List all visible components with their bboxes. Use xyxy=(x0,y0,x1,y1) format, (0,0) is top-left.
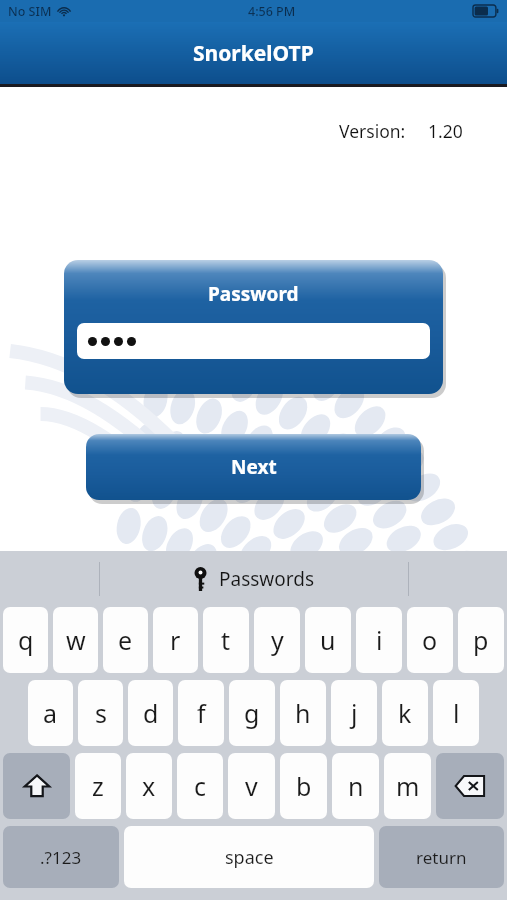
staticText: t xyxy=(221,623,231,657)
staticText: Password xyxy=(208,281,299,307)
staticText: w xyxy=(66,623,86,657)
staticText: z xyxy=(92,769,104,803)
button[interactable]: o xyxy=(407,607,453,673)
button[interactable]: r xyxy=(153,607,198,673)
button[interactable]: u xyxy=(305,607,351,673)
button[interactable]: Shift xyxy=(3,753,70,819)
staticText: q xyxy=(18,623,34,657)
staticText: n xyxy=(348,769,364,803)
button[interactable]: i xyxy=(356,607,402,673)
button[interactable]: Next xyxy=(86,434,421,500)
staticText: a xyxy=(43,696,58,730)
button[interactable]: s xyxy=(78,680,123,746)
staticText: e xyxy=(118,623,133,657)
staticText: b xyxy=(296,769,312,803)
staticText: x xyxy=(142,769,156,803)
staticText: u xyxy=(320,623,336,657)
staticText: v xyxy=(245,769,258,803)
button[interactable]: p xyxy=(458,607,504,673)
staticText: c xyxy=(194,769,207,803)
button[interactable]: x xyxy=(126,753,172,819)
button[interactable]: d xyxy=(128,680,173,746)
staticText: i xyxy=(376,623,383,657)
staticText: p xyxy=(473,623,489,657)
button[interactable]: c xyxy=(177,753,223,819)
staticText: m xyxy=(396,769,420,803)
staticText: Passwords xyxy=(219,566,315,592)
staticText: SnorkelOTP xyxy=(193,39,314,68)
button[interactable]: g xyxy=(229,680,275,746)
button[interactable]: n xyxy=(332,753,379,819)
button[interactable]: l xyxy=(433,680,479,746)
staticText: l xyxy=(453,696,460,730)
staticText: 1.20 xyxy=(428,119,463,143)
button[interactable]: .?123 xyxy=(3,826,119,888)
button[interactable]: Backspace xyxy=(436,753,504,819)
button[interactable]: q xyxy=(3,607,48,673)
button[interactable]: Password xyxy=(64,260,443,394)
button[interactable]: h xyxy=(280,680,326,746)
staticText: Version: xyxy=(339,119,406,143)
staticText: f xyxy=(197,696,206,730)
button[interactable] xyxy=(77,323,430,359)
staticText: 4:56 PM xyxy=(248,3,296,20)
staticText: space xyxy=(225,845,274,870)
staticText: h xyxy=(295,696,311,730)
button[interactable]: return xyxy=(379,826,504,888)
button[interactable]: y xyxy=(254,607,300,673)
button[interactable]: f xyxy=(178,680,224,746)
button[interactable]: space xyxy=(124,826,374,888)
staticText: s xyxy=(95,696,107,730)
staticText: d xyxy=(143,696,159,730)
staticText: No SIM xyxy=(8,3,52,20)
staticText: return xyxy=(416,846,467,869)
staticText: j xyxy=(351,696,358,730)
staticText: g xyxy=(244,696,260,730)
button[interactable]: w xyxy=(53,607,98,673)
button[interactable]: v xyxy=(228,753,275,819)
staticText: Next xyxy=(231,454,277,480)
button[interactable]: k xyxy=(382,680,428,746)
button[interactable]: b xyxy=(280,753,327,819)
staticText: o xyxy=(422,623,438,657)
button[interactable]: e xyxy=(103,607,148,673)
staticText: r xyxy=(170,623,181,657)
staticText: .?123 xyxy=(40,846,82,869)
button[interactable]: z xyxy=(75,753,121,819)
button[interactable]: Passwords xyxy=(100,566,408,592)
button[interactable]: j xyxy=(331,680,377,746)
button[interactable]: t xyxy=(203,607,249,673)
staticText: y xyxy=(271,623,284,657)
button[interactable]: m xyxy=(384,753,431,819)
staticText: k xyxy=(398,696,412,730)
button[interactable]: a xyxy=(28,680,73,746)
